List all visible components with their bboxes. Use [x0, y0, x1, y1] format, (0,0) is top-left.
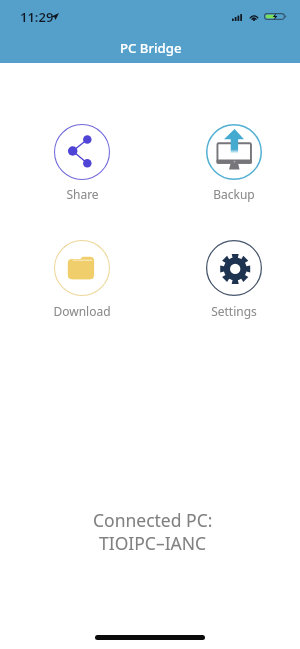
staticText: Download	[53, 303, 111, 319]
staticText: PC Bridge	[120, 39, 182, 57]
staticText: Connected PC:	[93, 508, 213, 532]
staticText: Settings	[211, 303, 257, 319]
staticText: Share	[66, 186, 99, 202]
staticText: 11:29	[20, 8, 54, 26]
button[interactable]: Share	[40, 124, 124, 204]
button[interactable]: Download	[40, 240, 124, 320]
button[interactable]: Settings	[192, 240, 276, 320]
staticText: TIOIPC–IANC	[99, 531, 207, 555]
button[interactable]: Backup	[192, 124, 276, 204]
staticText: Backup	[213, 186, 255, 202]
